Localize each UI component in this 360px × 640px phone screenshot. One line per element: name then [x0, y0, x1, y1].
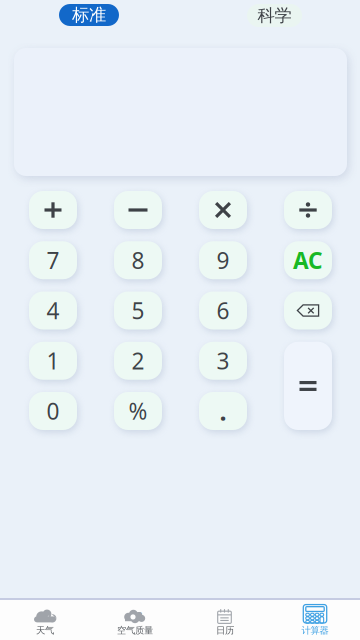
staticText: AC — [293, 245, 323, 275]
button[interactable]: 0 — [29, 392, 77, 430]
staticText: 9 — [216, 245, 229, 275]
button[interactable]: 天气 — [0, 600, 90, 640]
staticText: 8 — [131, 245, 144, 275]
staticText: 2 — [137, 608, 142, 621]
staticText: 7 — [46, 245, 59, 275]
staticText: 6 — [216, 295, 229, 325]
staticText: 日历 — [216, 625, 234, 636]
button[interactable]: Divide — [284, 191, 332, 229]
staticText: 1 — [46, 346, 59, 376]
button[interactable]: . — [199, 392, 247, 430]
button[interactable]: 标准 — [59, 4, 119, 26]
button[interactable]: 2 — [90, 600, 180, 640]
staticText: 3 — [216, 346, 229, 376]
button[interactable]: 6 — [199, 291, 247, 329]
button[interactable]: 日历 — [180, 600, 270, 640]
button[interactable]: AC — [284, 241, 332, 279]
button[interactable]: Equals — [284, 342, 332, 430]
button[interactable]: Subtract — [114, 191, 162, 229]
button[interactable]: 4 — [29, 291, 77, 329]
button[interactable]: 8 — [114, 241, 162, 279]
staticText: 2 — [131, 346, 144, 376]
button[interactable]: 3 — [199, 342, 247, 380]
button[interactable]: Multiply — [199, 191, 247, 229]
button[interactable]: 科学 — [247, 4, 302, 27]
button[interactable]: Backspace — [284, 291, 332, 329]
button[interactable]: 5 — [114, 291, 162, 329]
staticText: 5 — [131, 295, 144, 325]
button[interactable]: 计算器 — [270, 600, 360, 640]
staticText: 计算器 — [301, 625, 328, 636]
staticText: 空气质量 — [117, 625, 153, 636]
button[interactable]: 9 — [199, 241, 247, 279]
button[interactable]: 7 — [29, 241, 77, 279]
staticText: 科学 — [257, 5, 291, 26]
staticText: . — [219, 394, 226, 428]
staticText: 4 — [46, 295, 59, 325]
staticText: 天气 — [36, 625, 54, 636]
button[interactable]: % — [114, 392, 162, 430]
staticText: % — [128, 396, 147, 426]
staticText: 0 — [46, 396, 59, 426]
button[interactable]: 1 — [29, 342, 77, 380]
button[interactable]: 2 — [114, 342, 162, 380]
staticText: 标准 — [72, 4, 106, 26]
button[interactable]: Add — [29, 191, 77, 229]
